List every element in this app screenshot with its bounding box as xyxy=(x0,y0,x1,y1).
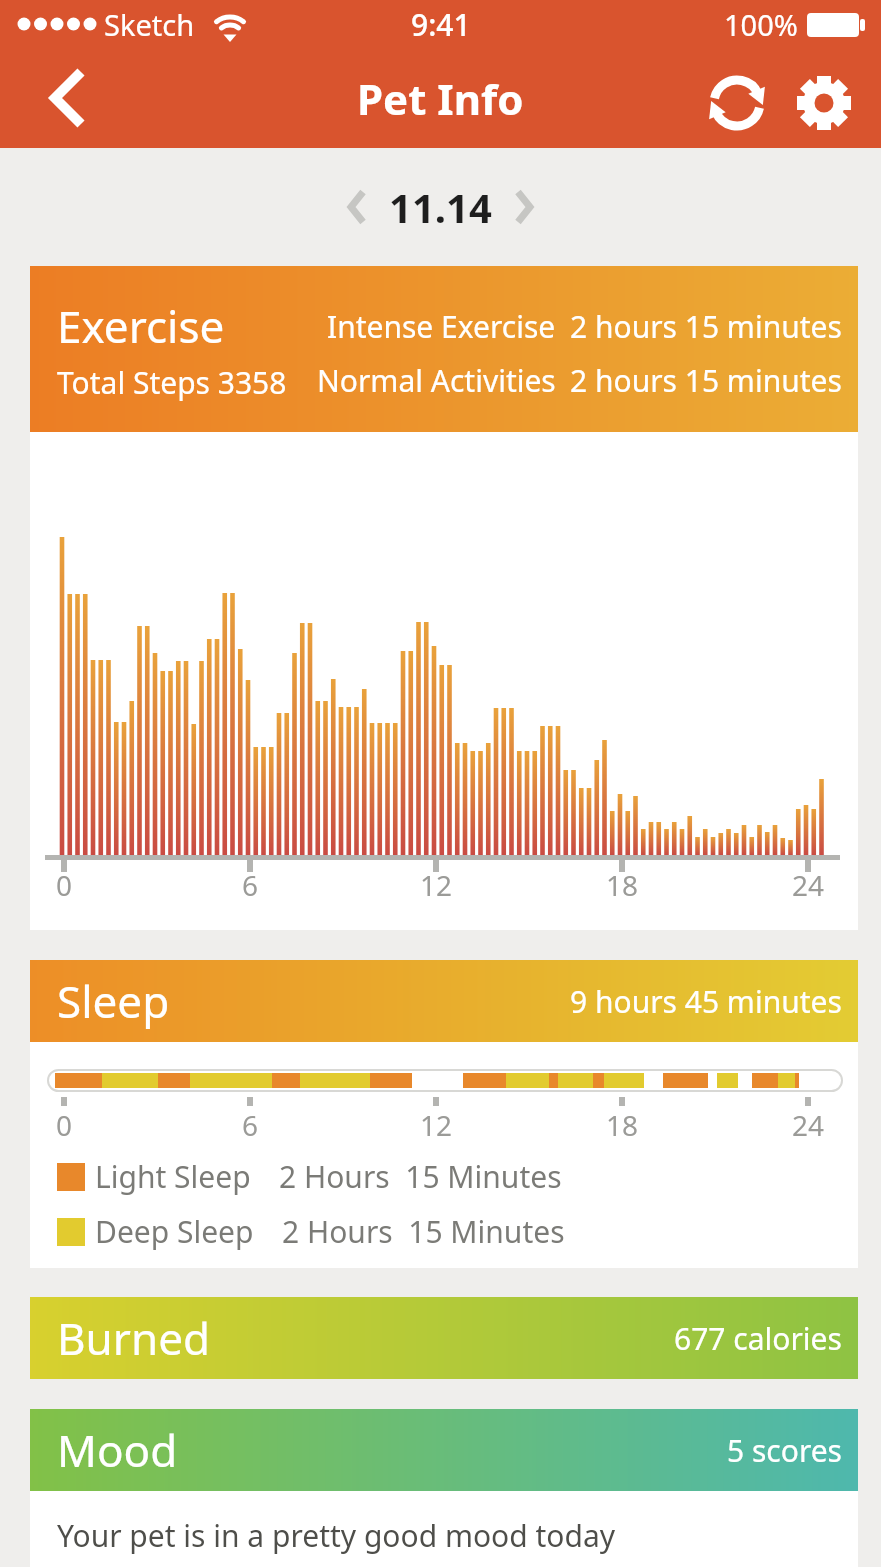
button[interactable] xyxy=(702,66,772,136)
staticText: 0 xyxy=(56,866,73,904)
staticText: 2 Hours 15 Minutes xyxy=(279,1156,562,1197)
staticText: 0 xyxy=(56,1106,73,1144)
staticText: 9 hours 45 minutes xyxy=(570,981,842,1022)
staticText: Sketch xyxy=(104,5,195,44)
staticText: Mood xyxy=(57,1420,178,1480)
staticText: Intense Exercise xyxy=(327,306,556,347)
staticText: 677 calories xyxy=(674,1318,842,1359)
staticText: 18 xyxy=(606,866,639,904)
staticText: Exercise xyxy=(57,296,225,356)
staticText: 2 hours 15 minutes xyxy=(570,306,842,347)
staticText: 12 xyxy=(420,1106,453,1144)
staticText: Total Steps 3358 xyxy=(57,362,287,403)
staticText: 2 Hours 15 Minutes xyxy=(282,1211,565,1252)
staticText: Your pet is in a pretty good mood today xyxy=(57,1515,616,1556)
staticText: 9:41 xyxy=(411,4,471,45)
button[interactable]: 11.14 xyxy=(347,180,534,234)
button[interactable] xyxy=(789,66,859,136)
button[interactable]: Sleep xyxy=(30,960,858,1042)
staticText: 5 scores xyxy=(727,1430,842,1471)
staticText: Burned xyxy=(57,1308,211,1368)
staticText: 11.14 xyxy=(389,180,492,234)
staticText: 6 xyxy=(242,1106,259,1144)
staticText: 24 xyxy=(792,866,825,904)
button[interactable]: Burned xyxy=(30,1297,858,1379)
staticText: 18 xyxy=(606,1106,639,1144)
staticText: 6 xyxy=(242,866,259,904)
staticText: Deep Sleep xyxy=(95,1211,254,1252)
staticText: Sleep xyxy=(57,971,170,1031)
staticText: Normal Activities xyxy=(317,360,556,401)
button[interactable]: Exercise xyxy=(30,266,858,432)
button[interactable] xyxy=(36,58,100,138)
staticText: 12 xyxy=(420,866,453,904)
button[interactable]: Mood xyxy=(30,1409,858,1491)
staticText: Light Sleep xyxy=(95,1156,251,1197)
staticText: 100% xyxy=(724,5,798,44)
staticText: 24 xyxy=(792,1106,825,1144)
staticText: 2 hours 15 minutes xyxy=(570,360,842,401)
staticText: Pet Info xyxy=(357,70,524,127)
